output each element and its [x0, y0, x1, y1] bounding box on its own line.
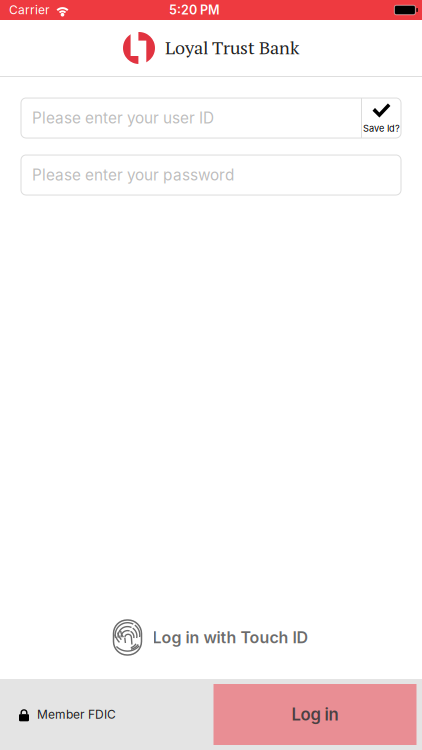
staticText: Member FDIC [37, 707, 116, 722]
button[interactable]: Log in [213, 684, 416, 745]
button[interactable]: Log in with Touch ID [107, 617, 314, 658]
button[interactable]: Member FDIC [0, 679, 128, 750]
staticText: Please enter your user ID [32, 109, 214, 127]
staticText: Save Id? [363, 123, 400, 134]
button[interactable]: Save Id? [361, 98, 401, 138]
staticText: Carrier [9, 3, 50, 17]
button[interactable]: Please enter your user ID [21, 98, 361, 138]
staticText: Loyal Trust Bank [165, 35, 299, 59]
staticText: 5:20 PM [169, 2, 220, 18]
staticText: Log in with Touch ID [152, 628, 308, 647]
staticText: Please enter your password [32, 166, 234, 184]
staticText: Log in [291, 704, 338, 725]
